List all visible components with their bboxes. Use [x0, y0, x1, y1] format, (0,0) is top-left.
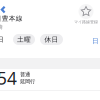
button[interactable]: 日	[92, 37, 99, 45]
button[interactable]: 休日	[40, 34, 63, 45]
staticText: 54	[0, 66, 17, 89]
staticText: 土曜	[17, 35, 31, 44]
staticText: 平日	[0, 35, 4, 44]
staticText: 延岡行	[20, 78, 35, 85]
button[interactable]: 土曜	[13, 34, 35, 45]
staticText: 普通	[20, 71, 30, 78]
button[interactable]: 平日	[0, 34, 8, 45]
staticText: 日豊本線	[0, 14, 23, 23]
button[interactable]: Back	[1, 6, 6, 14]
staticText: マイ路線登録	[74, 19, 98, 24]
staticText: 崎	[0, 24, 3, 30]
button[interactable]: マイ路線登録	[74, 4, 98, 24]
staticText: 休日	[44, 35, 58, 44]
staticText: 日	[92, 37, 99, 45]
